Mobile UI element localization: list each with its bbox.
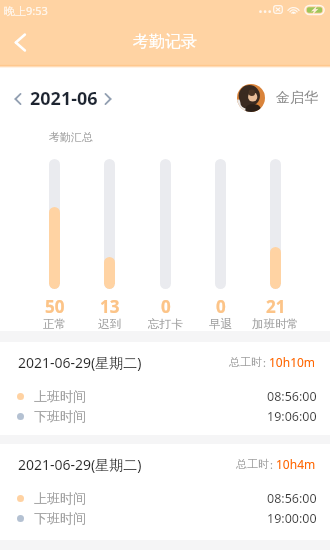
staticText: 2021-06	[30, 86, 98, 111]
button[interactable]: Back	[4, 26, 37, 59]
staticText: 正常	[43, 317, 67, 330]
button[interactable]: 21	[248, 159, 303, 331]
staticText: 加班时常	[252, 317, 299, 330]
staticText: 上班时间	[34, 490, 86, 506]
button[interactable]: 13	[82, 159, 137, 331]
staticText: 下班时间	[34, 408, 86, 424]
staticText: 21	[266, 295, 286, 318]
staticText: 晚上9:53	[4, 3, 48, 18]
button[interactable]: 2021-06-29(星期二)	[0, 342, 330, 435]
staticText: 13	[100, 295, 120, 318]
staticText: 忘打卡	[148, 317, 183, 330]
button[interactable]: 2021-06-29(星期二)	[0, 444, 330, 537]
button[interactable]: 金启华	[237, 84, 318, 112]
staticText: :	[270, 457, 273, 472]
staticText: 考勤汇总	[49, 130, 93, 144]
staticText: 0	[161, 295, 171, 318]
button[interactable]: 2021-06	[0, 82, 122, 115]
staticText: 2021-06-29(星期二)	[18, 353, 142, 372]
staticText: 2021-06-29(星期二)	[18, 455, 142, 474]
staticText: 总工时	[236, 457, 269, 471]
staticText: 0	[216, 295, 226, 318]
staticText: 考勤记录	[133, 32, 197, 52]
button[interactable]: 0	[138, 159, 193, 331]
staticText: 10h4m	[276, 456, 316, 472]
staticText: 19:06:00	[267, 408, 317, 425]
staticText: 19:00:00	[267, 510, 317, 527]
button[interactable]: 0	[193, 159, 248, 331]
staticText: 金启华	[276, 89, 318, 107]
staticText: 50	[45, 295, 65, 318]
staticText: 08:56:00	[267, 388, 317, 405]
staticText: 08:56:00	[267, 490, 317, 507]
staticText: 迟到	[98, 317, 122, 330]
staticText: 10h10m	[269, 354, 316, 370]
button[interactable]: 50	[27, 159, 82, 331]
staticText: 下班时间	[34, 510, 86, 526]
staticText: 上班时间	[34, 388, 86, 404]
staticText: 总工时	[229, 355, 262, 369]
staticText: :	[263, 355, 266, 370]
staticText: 早退	[209, 317, 233, 330]
